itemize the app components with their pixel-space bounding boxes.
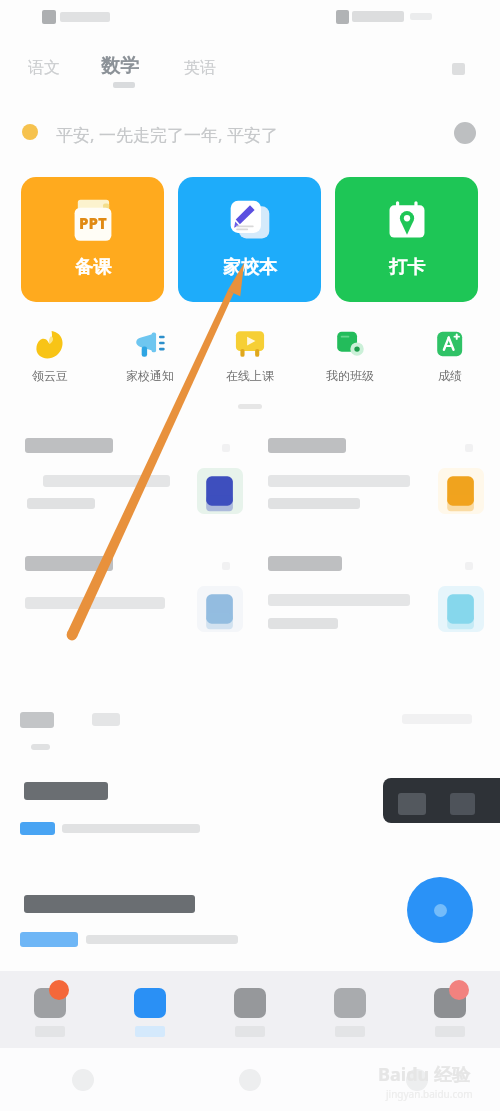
button[interactable]: PPT: [21, 177, 164, 302]
button[interactable]: [0, 883, 500, 973]
staticText: 平安, 一先走完了一年, 平安了: [56, 123, 278, 146]
staticText: PPT: [79, 213, 107, 233]
button[interactable]: Profile: [400, 971, 500, 1053]
staticText: 领云豆: [32, 368, 68, 383]
staticText: 语文: [28, 58, 60, 78]
button[interactable]: Discover: [200, 971, 300, 1053]
staticText: 在线上课: [226, 368, 274, 383]
staticText: 家校本: [223, 256, 277, 279]
button[interactable]: 成绩: [400, 322, 500, 383]
button[interactable]: 家校本: [178, 177, 321, 302]
staticText: 打卡: [389, 256, 425, 279]
button[interactable]: 领云豆: [0, 322, 100, 383]
button[interactable]: Compose: [407, 877, 473, 943]
button[interactable]: System 2: [333, 1048, 500, 1111]
button[interactable]: 家校通知: [100, 322, 200, 383]
button[interactable]: [0, 554, 250, 654]
staticText: 家校通知: [126, 368, 174, 383]
staticText: 备课: [75, 256, 111, 279]
button[interactable]: [0, 436, 250, 536]
button[interactable]: 英语: [182, 56, 218, 80]
button[interactable]: 我的班级: [300, 322, 400, 383]
staticText: 英语: [184, 58, 216, 78]
button[interactable]: [243, 554, 493, 654]
button[interactable]: Tools: [300, 971, 400, 1053]
button[interactable]: [0, 770, 500, 860]
staticText: 我的班级: [326, 368, 374, 383]
button[interactable]: [20, 712, 54, 728]
button[interactable]: Messages: [0, 971, 100, 1053]
staticText: 数学: [101, 54, 139, 78]
button[interactable]: [243, 436, 493, 536]
button[interactable]: 语文: [26, 56, 62, 80]
button[interactable]: 平安, 一先走完了一年, 平安了: [0, 110, 500, 154]
staticText: 成绩: [438, 368, 462, 383]
staticText: jingyan.baidu.com: [386, 1087, 473, 1101]
button[interactable]: 在线上课: [200, 322, 300, 383]
staticText: Baidu 经验: [378, 1062, 470, 1087]
button[interactable]: 打卡: [335, 177, 478, 302]
button[interactable]: 数学: [99, 52, 141, 80]
button[interactable]: Home: [100, 971, 200, 1053]
button[interactable]: More: [452, 63, 465, 75]
button[interactable]: Tip: [383, 778, 500, 823]
